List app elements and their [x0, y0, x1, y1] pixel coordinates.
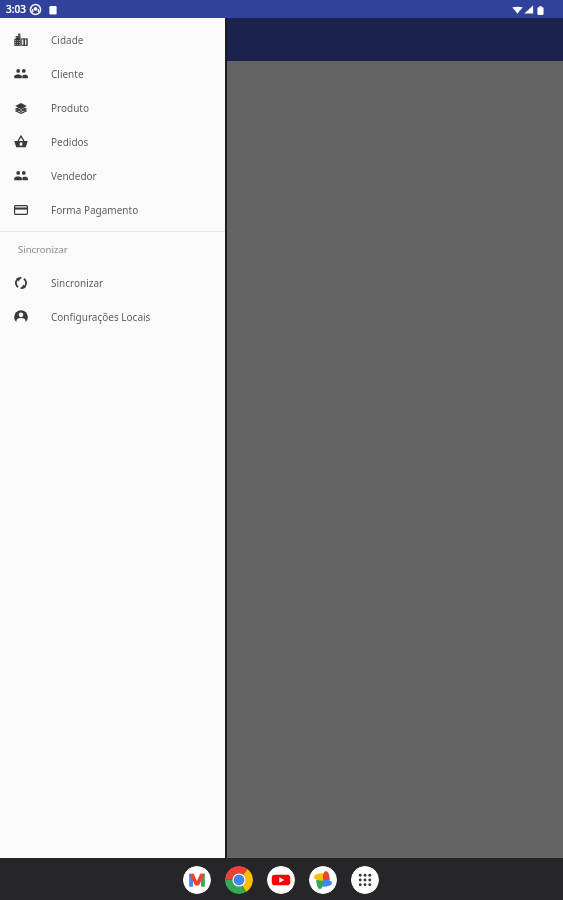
staticText: Cliente [51, 67, 84, 81]
button[interactable]: Configurações Locais [0, 300, 225, 334]
button[interactable]: Produto [0, 91, 225, 125]
staticText: Configurações Locais [51, 310, 151, 324]
staticText: Pedidos [51, 135, 89, 149]
staticText: Forma Pagamento [51, 203, 139, 217]
button[interactable]: Vendedor [0, 159, 225, 193]
staticText: Sincronizar [18, 243, 68, 256]
button[interactable]: Pedidos [0, 125, 225, 159]
button[interactable]: YouTube [267, 866, 295, 894]
staticText: Cidade [51, 33, 84, 47]
staticText: Vendedor [51, 169, 97, 183]
button[interactable]: Forma Pagamento [0, 193, 225, 227]
button[interactable]: Cliente [0, 57, 225, 91]
button[interactable]: Google Photos [309, 866, 337, 894]
button[interactable]: All apps [351, 866, 379, 894]
button[interactable]: Gmail [183, 866, 211, 894]
staticText: 3:03 [6, 2, 26, 16]
button[interactable]: Cidade [0, 23, 225, 57]
staticText: Sincronizar [51, 276, 104, 290]
button[interactable]: Chrome [225, 866, 253, 894]
staticText: Produto [51, 101, 90, 115]
button[interactable]: Sincronizar [0, 266, 225, 300]
